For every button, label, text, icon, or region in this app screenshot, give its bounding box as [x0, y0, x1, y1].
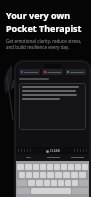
button[interactable]: Key [58, 180, 64, 186]
button[interactable]: Key [65, 180, 71, 186]
button[interactable]: Key [68, 164, 74, 170]
staticText: Your very own [6, 9, 71, 21]
button[interactable]: Clear [44, 148, 62, 154]
button[interactable]: Key [28, 180, 35, 186]
button[interactable]: Key [25, 164, 32, 170]
button[interactable]: Key [44, 180, 50, 186]
button[interactable]: Suggestion [41, 157, 65, 158]
button[interactable]: Key [72, 180, 78, 186]
button[interactable]: Key [47, 172, 54, 178]
button[interactable]: Key [55, 172, 62, 178]
button[interactable]: Key [63, 172, 70, 178]
button[interactable]: Key [79, 172, 86, 178]
button[interactable] [65, 69, 86, 75]
staticText: and build resilience every day. [6, 44, 70, 50]
button[interactable] [19, 83, 86, 130]
button[interactable]: Suggestion [65, 157, 89, 158]
button[interactable]: Key [54, 164, 60, 170]
button[interactable]: Key [47, 164, 53, 170]
button[interactable]: Key [26, 172, 32, 178]
button[interactable]: Key [33, 172, 39, 178]
button[interactable]: Key [75, 164, 81, 170]
button[interactable]: Key [40, 164, 46, 170]
staticText: Pocket Therapist [6, 22, 82, 34]
button[interactable]: Key [82, 164, 88, 170]
button[interactable]: Key [36, 180, 43, 186]
button[interactable]: Key [51, 180, 57, 186]
button[interactable]: Suggestion [16, 157, 41, 158]
button[interactable] [19, 69, 40, 75]
button[interactable]: Key [19, 172, 25, 178]
button[interactable]: Key [40, 172, 46, 178]
button[interactable]: Key [71, 172, 78, 178]
button[interactable]: Key [33, 164, 39, 170]
staticText: Get emotional clarity, reduce stress, [6, 38, 82, 44]
staticText: CLEAR [50, 149, 60, 153]
button[interactable]: Key [61, 164, 67, 170]
button[interactable]: Key [17, 164, 24, 170]
button[interactable] [42, 69, 63, 75]
